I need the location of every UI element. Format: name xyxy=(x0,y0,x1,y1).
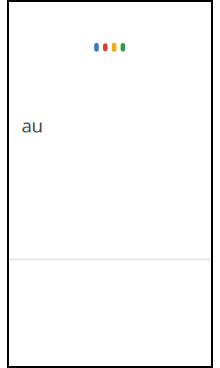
button[interactable]: Listening xyxy=(93,38,127,56)
staticText: au xyxy=(21,113,43,138)
